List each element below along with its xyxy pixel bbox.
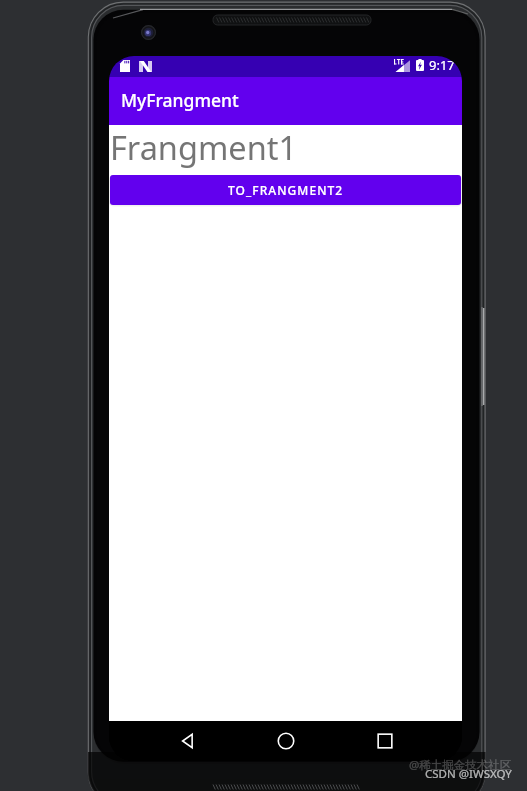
staticText: CSDN @IWSXQY xyxy=(425,766,512,782)
staticText: TO_FRANGMENT2 xyxy=(228,182,344,198)
button[interactable]: Back xyxy=(179,732,197,750)
button[interactable]: TO_FRANGMENT2 xyxy=(110,175,461,205)
staticText: 9:17 xyxy=(429,56,455,74)
button[interactable]: Home xyxy=(277,732,295,750)
staticText: @稀土掘金技术社区 xyxy=(409,757,512,773)
staticText: MyFrangment xyxy=(121,88,239,112)
staticText: Frangment1 xyxy=(110,125,298,169)
button[interactable]: Recent apps xyxy=(376,732,394,750)
